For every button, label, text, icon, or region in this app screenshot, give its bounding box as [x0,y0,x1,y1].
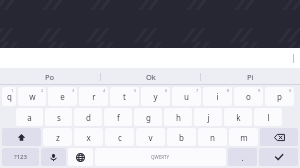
staticText: e [60,91,65,102]
button[interactable]: d [74,108,102,126]
button[interactable]: l [254,108,282,126]
staticText: . [241,152,244,163]
staticText: y [153,91,158,102]
button[interactable]: Backspace [260,128,298,146]
button[interactable]: z [43,128,72,146]
staticText: QWERTY [151,154,170,160]
button[interactable]: Po [0,68,100,85]
staticText: 5 [134,88,137,93]
button[interactable]: j [194,108,222,126]
staticText: t [123,91,126,102]
button[interactable]: Shift [2,128,41,146]
staticText: 8 [227,88,230,93]
staticText: h [176,112,181,123]
staticText: 9 [258,88,261,93]
staticText: l [267,112,270,123]
staticText: 2 [41,88,44,93]
staticText: b [179,132,184,143]
staticText: n [210,132,215,143]
staticText: j [207,112,210,123]
button[interactable]: b [167,128,196,146]
staticText: 3 [72,88,75,93]
button[interactable]: w [18,87,46,106]
button[interactable]: h [164,108,192,126]
button[interactable]: c [105,128,134,146]
button[interactable]: g [134,108,162,126]
staticText: 6 [165,88,168,93]
staticText: ?123 [14,153,27,161]
staticText: r [92,91,96,102]
button[interactable]: e [48,87,77,106]
button[interactable]: x [74,128,103,146]
staticText: o [246,91,251,102]
button[interactable]: y [141,87,170,106]
button[interactable]: . [228,148,257,166]
staticText: g [146,112,151,123]
staticText: c [118,132,122,143]
staticText: s [57,112,61,123]
button[interactable]: Voice input [41,148,66,166]
staticText: Ok [146,72,156,82]
staticText: a [27,112,32,123]
staticText: Po [45,72,55,82]
button[interactable]: Enter [259,148,298,166]
button[interactable]: a [16,108,43,126]
staticText: k [236,112,241,123]
staticText: x [86,132,91,143]
button[interactable]: s [45,108,72,126]
staticText: p [277,91,282,102]
button[interactable]: r [79,87,108,106]
staticText: m [240,132,248,143]
staticText: 4 [103,88,106,93]
button[interactable]: k [224,108,252,126]
staticText: 1 [11,88,14,93]
staticText: w [29,91,36,102]
button[interactable]: m [229,128,258,146]
button[interactable]: Change language [68,148,93,166]
button[interactable]: q [2,87,16,106]
staticText: 7 [196,88,199,93]
button[interactable]: v [136,128,165,146]
staticText: u [184,91,189,102]
button[interactable]: n [198,128,227,146]
button[interactable]: Pi [201,68,300,85]
staticText: q [7,91,12,102]
button[interactable]: u [172,87,201,106]
button[interactable]: p [265,87,294,106]
button[interactable]: f [104,108,132,126]
button[interactable]: i [203,87,232,106]
button[interactable]: t [110,87,139,106]
staticText: v [148,132,153,143]
button[interactable]: o [234,87,263,106]
button[interactable]: Ok [101,68,200,85]
button[interactable]: Space [95,148,226,166]
staticText: 0 [289,88,292,93]
staticText: d [86,112,91,123]
button[interactable]: ?123 [2,148,39,166]
staticText: z [56,132,60,143]
staticText: f [117,112,120,123]
staticText: i [216,91,219,102]
staticText: Pi [247,72,254,82]
